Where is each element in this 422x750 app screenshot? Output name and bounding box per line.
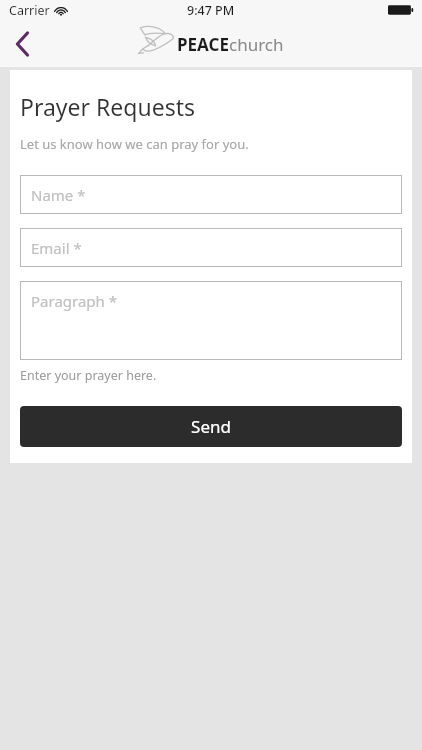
staticText: Let us know how we can pray for you. (20, 135, 249, 153)
staticText: Enter your prayer here. (20, 367, 157, 384)
staticText: Email * (31, 238, 82, 258)
button[interactable]: Back (0, 21, 46, 67)
staticText: Prayer Requests (20, 91, 195, 122)
staticText: Name * (31, 185, 86, 205)
staticText: PEACE (177, 33, 229, 56)
staticText: Carrier (9, 2, 50, 19)
button[interactable]: Paragraph * (20, 281, 402, 360)
button[interactable]: Email * (20, 228, 402, 267)
staticText: Send (191, 415, 231, 438)
staticText: church (229, 33, 284, 56)
staticText: 9:47 PM (187, 2, 235, 19)
button[interactable]: Send (20, 406, 402, 447)
staticText: Paragraph * (31, 291, 117, 311)
button[interactable]: Name * (20, 175, 402, 214)
